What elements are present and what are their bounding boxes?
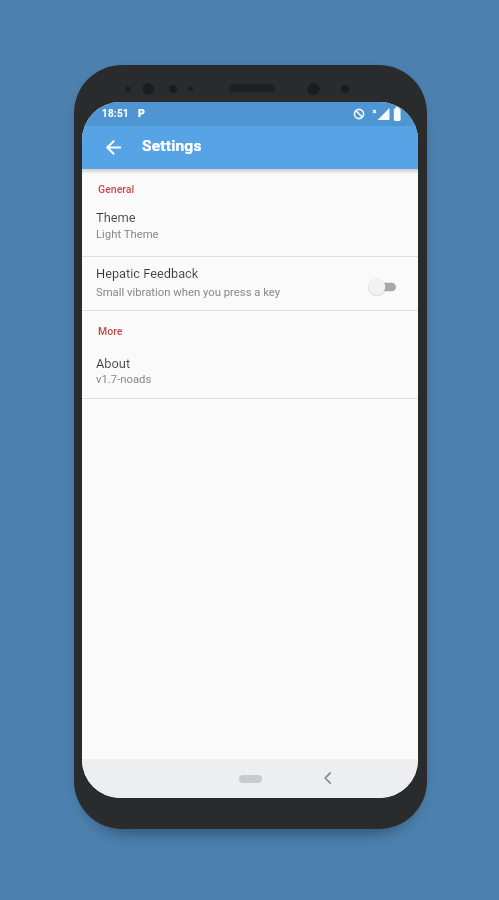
button[interactable]: About: [82, 346, 418, 398]
staticText: Light Theme: [96, 228, 159, 241]
staticText: General: [98, 183, 135, 195]
staticText: P: [138, 107, 145, 119]
button[interactable]: [239, 775, 262, 783]
staticText: More: [98, 325, 123, 337]
staticText: v1.7-noads: [96, 373, 152, 386]
button[interactable]: Hepatic Feedback: [82, 257, 418, 310]
staticText: About: [96, 356, 131, 371]
button[interactable]: [96, 130, 131, 165]
staticText: 18:51: [102, 108, 129, 120]
staticText: Theme: [96, 210, 136, 225]
staticText: Small vibration when you press a key: [96, 286, 281, 299]
staticText: Hepatic Feedback: [96, 266, 199, 281]
staticText: Settings: [142, 137, 202, 155]
button[interactable]: [313, 764, 341, 792]
button[interactable]: Theme: [82, 199, 418, 256]
